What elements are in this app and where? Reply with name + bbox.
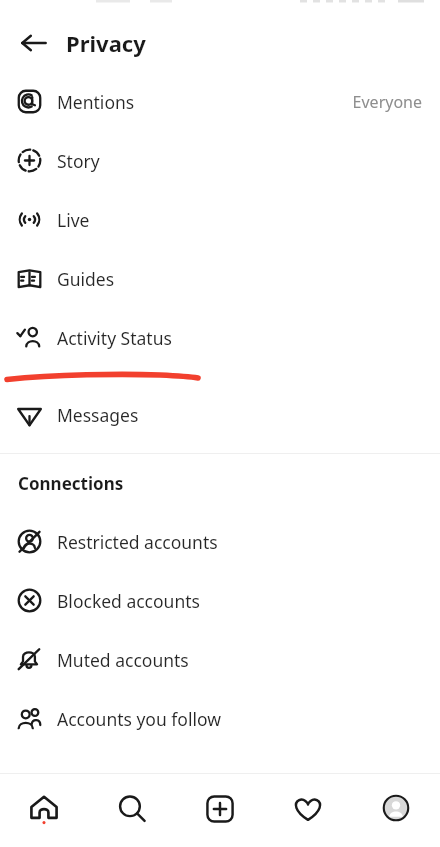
staticText: Privacy <box>66 28 146 58</box>
button[interactable]: Activity <box>264 774 352 847</box>
staticText: Story <box>57 149 100 173</box>
button[interactable]: Back <box>10 19 58 67</box>
button[interactable]: Home <box>0 774 88 847</box>
button[interactable]: Messages <box>0 387 440 443</box>
button[interactable]: Profile <box>352 774 440 847</box>
button[interactable]: Accounts you follow <box>0 689 440 748</box>
staticText: Messages <box>57 403 139 427</box>
button[interactable]: Mentions <box>0 72 440 131</box>
button[interactable]: Guides <box>0 249 440 308</box>
staticText: Restricted accounts <box>57 530 218 554</box>
staticText: Everyone <box>352 91 422 113</box>
staticText: Accounts you follow <box>57 707 221 731</box>
button[interactable]: Muted accounts <box>0 630 440 689</box>
button[interactable]: Blocked accounts <box>0 571 440 630</box>
staticText: Guides <box>57 267 115 291</box>
staticText: Mentions <box>57 90 135 114</box>
staticText: Connections <box>18 472 124 495</box>
button[interactable]: Restricted accounts <box>0 512 440 571</box>
staticText: Muted accounts <box>57 648 189 672</box>
button[interactable]: Activity Status <box>0 308 440 367</box>
staticText: Blocked accounts <box>57 589 200 613</box>
button[interactable]: Live <box>0 190 440 249</box>
button[interactable]: Create <box>176 774 264 847</box>
staticText: Activity Status <box>57 326 172 350</box>
staticText: Live <box>57 208 90 232</box>
button[interactable]: Story <box>0 131 440 190</box>
button[interactable]: Search <box>88 774 176 847</box>
